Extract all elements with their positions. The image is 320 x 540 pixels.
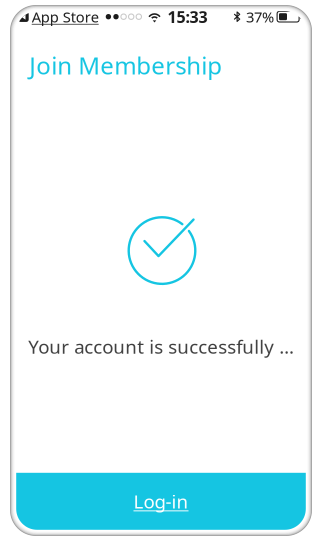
staticText: 37% <box>246 7 274 26</box>
staticText: App Store <box>32 7 99 26</box>
staticText: Log-in <box>133 489 188 514</box>
staticText: 15:33 <box>167 6 207 27</box>
button[interactable]: Log-in <box>16 473 306 530</box>
staticText: Your account is successfully created <box>28 334 294 359</box>
staticText: Join Membership <box>29 49 222 81</box>
